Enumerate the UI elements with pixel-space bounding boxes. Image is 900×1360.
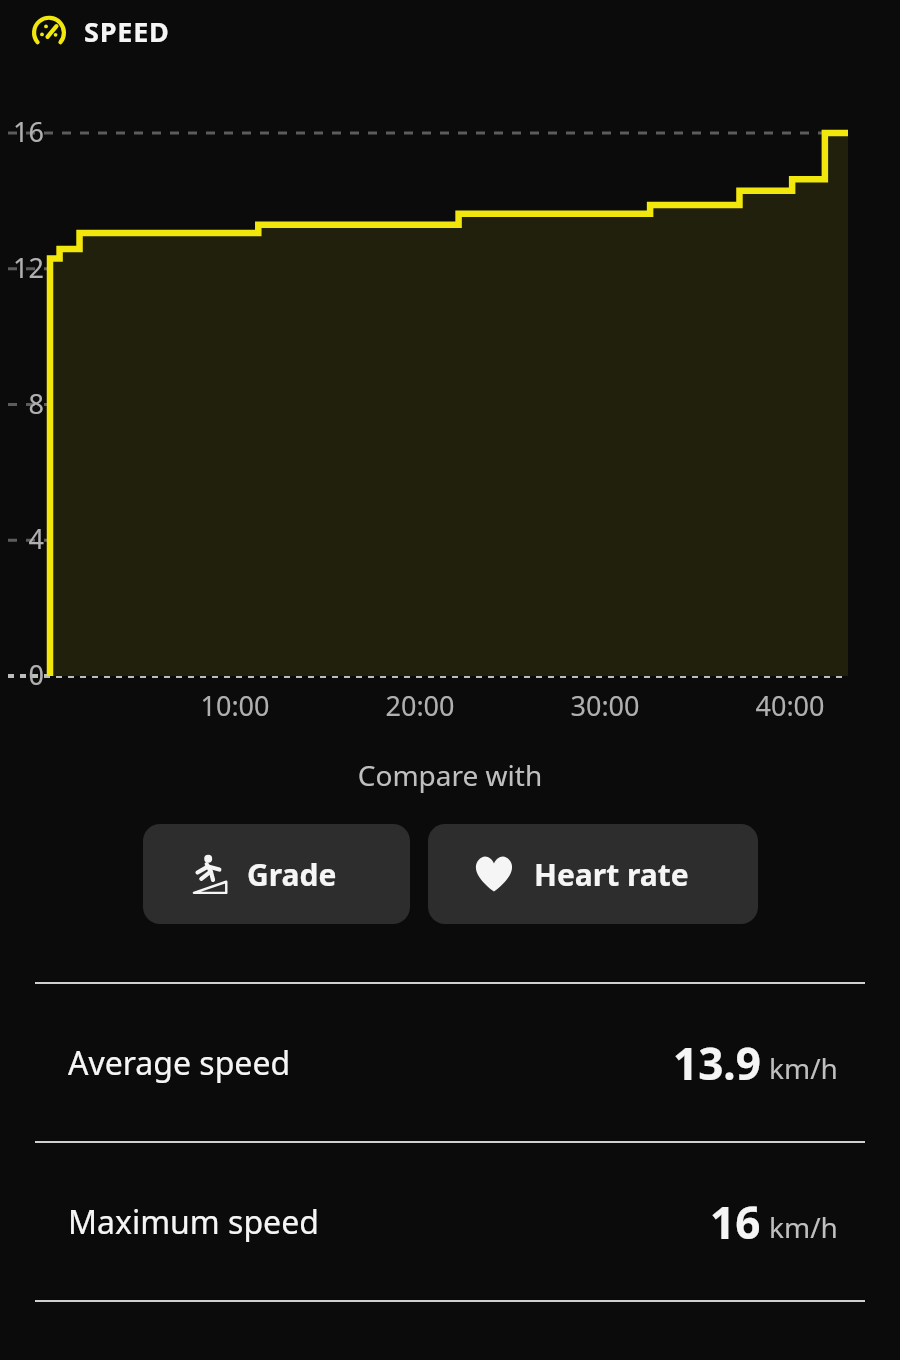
staticText: 12 xyxy=(0,249,44,286)
staticText: 20:00 xyxy=(360,687,480,724)
staticText: 16 xyxy=(0,113,44,150)
staticText: Average speed xyxy=(68,1041,291,1085)
staticText: km/h xyxy=(769,1049,838,1087)
staticText: SPEED xyxy=(84,13,170,50)
staticText: 0 xyxy=(0,656,44,693)
other: Speed xyxy=(28,10,70,52)
staticText: 13.9 xyxy=(673,1033,761,1093)
staticText: 40:00 xyxy=(730,687,850,724)
staticText: km/h xyxy=(769,1208,838,1246)
button[interactable]: Heart rate xyxy=(428,824,758,924)
button[interactable]: Average speed xyxy=(0,984,900,1141)
button[interactable]: Grade xyxy=(143,824,410,924)
staticText: 4 xyxy=(0,520,44,557)
staticText: 10:00 xyxy=(175,687,295,724)
staticText: Heart rate xyxy=(534,854,689,895)
staticText: Maximum speed xyxy=(68,1200,319,1244)
staticText: Compare with xyxy=(0,756,900,794)
button[interactable]: Speed xyxy=(0,0,900,62)
staticText: 30:00 xyxy=(545,687,665,724)
button[interactable]: Maximum speed xyxy=(0,1143,900,1300)
other: Heart rate xyxy=(472,852,516,896)
staticText: 8 xyxy=(0,385,44,422)
staticText: 16 xyxy=(710,1192,761,1252)
staticText: Grade xyxy=(247,854,337,895)
other: Grade xyxy=(187,853,229,895)
